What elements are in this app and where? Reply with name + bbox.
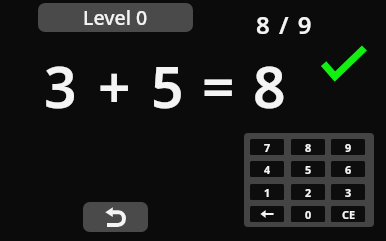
button[interactable]: Level 0: [38, 3, 193, 32]
button[interactable]: 8: [291, 139, 325, 155]
button[interactable]: 4: [250, 161, 284, 177]
button[interactable]: Backspace: [250, 206, 284, 222]
button[interactable]: 9: [331, 139, 365, 155]
button[interactable]: 2: [291, 184, 325, 200]
staticText: CE: [342, 207, 355, 222]
staticText: 3: [44, 47, 77, 125]
staticText: 0: [305, 207, 312, 222]
staticText: 7: [264, 140, 271, 155]
staticText: 6: [345, 162, 352, 177]
staticText: 8: [253, 47, 286, 125]
other: Correct: [318, 41, 372, 85]
button[interactable]: 7: [250, 139, 284, 155]
staticText: 8 / 9: [256, 8, 314, 41]
button[interactable]: 6: [331, 161, 365, 177]
staticText: 5: [151, 47, 184, 125]
staticText: 8: [305, 140, 312, 155]
button[interactable]: 3: [331, 184, 365, 200]
button[interactable]: 0: [291, 206, 325, 222]
staticText: 9: [345, 140, 352, 155]
button[interactable]: CE: [331, 206, 365, 222]
staticText: 4: [264, 162, 271, 177]
staticText: 2: [305, 185, 312, 200]
staticText: 3: [345, 185, 352, 200]
staticText: Level 0: [83, 4, 148, 31]
staticText: =: [202, 47, 235, 125]
staticText: 5: [305, 162, 312, 177]
button[interactable]: Undo: [83, 202, 148, 232]
button[interactable]: 1: [250, 184, 284, 200]
staticText: +: [98, 47, 131, 125]
staticText: 1: [264, 185, 271, 200]
button[interactable]: 5: [291, 161, 325, 177]
